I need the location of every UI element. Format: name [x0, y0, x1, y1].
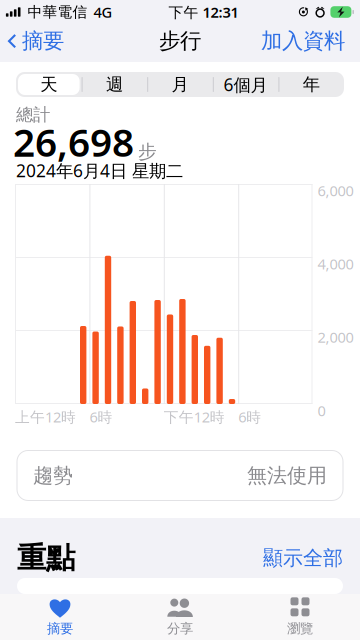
button[interactable]: 天	[16, 72, 82, 97]
staticText: 總計	[16, 104, 50, 125]
button[interactable]: 6個月	[213, 72, 278, 97]
staticText: 重點	[17, 540, 75, 576]
button[interactable]: 月	[147, 72, 213, 97]
button[interactable]: 顯示全部	[263, 546, 343, 570]
staticText: 6個月	[224, 73, 268, 96]
staticText: 6,000	[317, 181, 353, 200]
staticText: 4,000	[317, 254, 353, 274]
button[interactable]: 趨勢	[17, 450, 343, 500]
staticText: 趨勢	[33, 463, 73, 488]
staticText: 步行	[159, 28, 201, 54]
button[interactable]: 摘要	[0, 594, 120, 640]
staticText: 0	[317, 401, 325, 420]
staticText: 顯示全部	[263, 546, 343, 570]
button[interactable]: 分享	[120, 594, 240, 640]
staticText: 下午12時	[164, 407, 225, 426]
button[interactable]: 摘要	[0, 24, 70, 58]
staticText: 2024年6月4日 星期二	[16, 159, 183, 182]
staticText: 中華電信	[27, 3, 87, 21]
button[interactable]: 年	[278, 72, 344, 97]
button[interactable]: 週	[82, 72, 147, 97]
staticText: 步	[138, 140, 157, 163]
staticText: 無法使用	[247, 463, 327, 488]
button[interactable]: 瀏覽	[240, 594, 360, 640]
staticText: 6時	[238, 407, 261, 426]
staticText: 摘要	[22, 28, 64, 54]
staticText: 4G	[93, 2, 112, 22]
staticText: 天	[40, 74, 57, 95]
staticText: 分享	[167, 620, 193, 637]
staticText: 上午12時	[15, 407, 76, 426]
button[interactable]: 加入資料	[261, 24, 360, 58]
staticText: 6時	[89, 407, 112, 426]
staticText: 瀏覽	[287, 620, 313, 637]
staticText: 26,698	[13, 116, 134, 167]
staticText: 摘要	[47, 620, 73, 637]
staticText: 加入資料	[261, 28, 345, 54]
staticText: 下午 12:31	[169, 2, 239, 22]
staticText: 2,000	[317, 327, 353, 347]
staticText: 月	[171, 74, 188, 95]
staticText: 週	[106, 74, 123, 95]
staticText: 年	[303, 74, 320, 95]
